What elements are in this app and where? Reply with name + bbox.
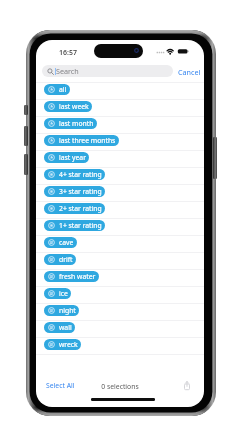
staticText: wreck (59, 340, 78, 349)
staticText: last three months (59, 136, 116, 145)
staticText: ice (59, 289, 68, 298)
button[interactable]: last week (36, 99, 204, 116)
staticText: drift (59, 255, 73, 264)
button[interactable]: 2+ star rating (36, 201, 204, 218)
button[interactable]: Search (42, 65, 173, 77)
staticText: last year (59, 153, 86, 162)
staticText: last week (59, 102, 89, 111)
button[interactable]: 4+ star rating (36, 167, 204, 184)
staticText: 3+ star rating (59, 187, 102, 196)
button[interactable]: ice (36, 286, 204, 303)
staticText: 4+ star rating (59, 170, 102, 179)
staticText: 0 selections (36, 382, 204, 391)
button[interactable]: 3+ star rating (36, 184, 204, 201)
staticText: all (59, 85, 67, 94)
button[interactable]: Select All (46, 379, 77, 391)
button[interactable]: fresh water (36, 269, 204, 286)
staticText: 1+ star rating (59, 221, 102, 230)
staticText: Search (56, 66, 79, 76)
staticText: 16:57 (59, 48, 77, 58)
button[interactable]: drift (36, 252, 204, 269)
button[interactable]: cave (36, 235, 204, 252)
staticText: 2+ star rating (59, 204, 102, 213)
staticText: Select All (46, 381, 75, 390)
button[interactable]: night (36, 303, 204, 320)
staticText: night (59, 306, 76, 315)
staticText: last month (59, 119, 94, 128)
staticText: Cancel (178, 67, 201, 77)
button[interactable]: last year (36, 150, 204, 167)
button[interactable]: wall (36, 320, 204, 337)
button[interactable]: wreck (36, 337, 204, 354)
button[interactable]: Share (181, 378, 193, 393)
button[interactable]: Cancel (176, 64, 202, 79)
staticText: fresh water (59, 272, 96, 281)
button[interactable]: last month (36, 116, 204, 133)
staticText: wall (59, 323, 72, 332)
staticText: cave (59, 238, 74, 247)
button[interactable]: last three months (36, 133, 204, 150)
button[interactable]: all (36, 82, 204, 99)
button[interactable]: 1+ star rating (36, 218, 204, 235)
